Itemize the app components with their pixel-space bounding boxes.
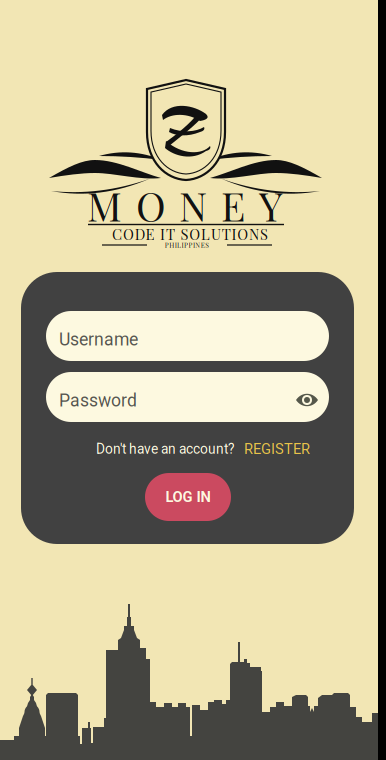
button[interactable]: LOG IN	[145, 473, 231, 521]
staticText: MONEY	[87, 178, 283, 232]
button[interactable]: REGISTER	[244, 440, 310, 458]
staticText: Password	[59, 390, 137, 411]
staticText: Don't have an account?	[96, 441, 234, 457]
staticText: CODE IT SOLUTIONS	[112, 224, 268, 244]
staticText: PHILIPPINES	[165, 241, 209, 249]
staticText: Username	[59, 329, 138, 350]
staticText: LOG IN	[165, 488, 210, 506]
staticText: REGISTER	[244, 440, 310, 458]
